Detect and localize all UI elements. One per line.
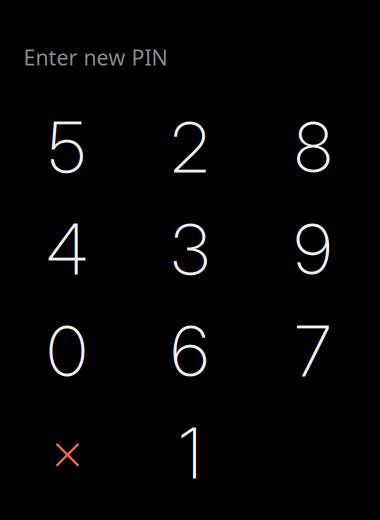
button[interactable]: 4: [5, 198, 128, 300]
button[interactable]: 2: [128, 96, 251, 198]
button[interactable]: 8: [251, 96, 374, 198]
staticText: 1: [179, 411, 201, 495]
staticText: Enter new PIN: [23, 43, 167, 71]
staticText: 9: [294, 207, 332, 291]
button[interactable]: 1: [128, 402, 251, 504]
staticText: 6: [171, 309, 209, 393]
staticText: 5: [48, 105, 85, 189]
button[interactable]: 0: [5, 300, 128, 402]
button[interactable]: 6: [128, 300, 251, 402]
button[interactable]: 3: [128, 198, 251, 300]
staticText: 7: [295, 309, 331, 393]
staticText: 8: [294, 105, 331, 189]
staticText: 0: [47, 309, 87, 393]
button[interactable]: 5: [5, 96, 128, 198]
button[interactable]: 9: [251, 198, 374, 300]
staticText: 3: [171, 207, 209, 291]
button[interactable]: Delete: [5, 402, 128, 504]
staticText: 2: [171, 105, 209, 189]
button[interactable]: 7: [251, 300, 374, 402]
staticText: 4: [46, 207, 87, 291]
